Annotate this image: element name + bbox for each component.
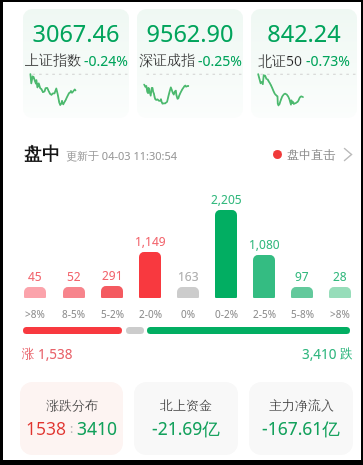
staticText: 盘中直击 [287, 147, 335, 162]
staticText: 2-5% [253, 307, 276, 321]
other: 盘中直击 [343, 147, 353, 162]
staticText: >8% [25, 307, 45, 321]
button[interactable]: 842.24 [251, 9, 357, 118]
button[interactable]: 盘中直击 [273, 143, 353, 166]
staticText: 291 [102, 267, 123, 283]
staticText: 0-2% [215, 307, 238, 321]
staticText: -0.25% [198, 51, 242, 70]
staticText: 9562.90 [137, 17, 243, 49]
button[interactable]: 北上资金 [134, 382, 238, 455]
staticText: 跌 [340, 346, 353, 362]
staticText: 深证成指 [139, 52, 195, 70]
staticText: 2,205 [211, 191, 242, 207]
button[interactable]: 3067.46 [23, 9, 129, 118]
staticText: 97 [295, 268, 309, 284]
staticText: 3,410 [302, 345, 337, 363]
staticText: 涨跌分布 [46, 397, 98, 413]
staticText: 52 [67, 268, 81, 284]
staticText: : [67, 420, 77, 436]
staticText: 163 [178, 268, 199, 284]
staticText: -21.69亿 [152, 416, 220, 440]
staticText: 28 [333, 268, 347, 284]
staticText: 45 [28, 268, 42, 284]
staticText: -0.24% [84, 51, 128, 70]
button[interactable]: 涨跌分布 [20, 382, 123, 455]
staticText: -0.73% [306, 51, 350, 70]
staticText: 主力净流入 [269, 397, 334, 413]
staticText: 842.24 [251, 17, 357, 49]
staticText: 北证50 [258, 51, 303, 70]
staticText: 1,538 [38, 345, 73, 363]
staticText: -167.61亿 [262, 416, 340, 440]
staticText: 盘中 [24, 143, 60, 166]
staticText: 3410 [77, 416, 118, 440]
staticText: 8-5% [62, 307, 85, 321]
staticText: 1538 [26, 416, 67, 440]
staticText: 2-0% [139, 307, 162, 321]
button[interactable]: 9562.90 [137, 9, 243, 118]
button[interactable]: 主力净流入 [249, 382, 353, 455]
staticText: 更新于 04-03 11:30:54 [66, 148, 178, 163]
staticText: 5-2% [101, 307, 124, 321]
staticText: >8% [330, 307, 350, 321]
staticText: 1,080 [249, 236, 280, 252]
staticText: 北上资金 [160, 397, 212, 413]
staticText: 1,149 [135, 233, 166, 249]
staticText: 3067.46 [23, 17, 129, 49]
staticText: 0% [181, 307, 196, 321]
staticText: 上证指数 [25, 52, 81, 70]
staticText: 5-8% [291, 307, 314, 321]
staticText: 涨 [22, 346, 35, 362]
